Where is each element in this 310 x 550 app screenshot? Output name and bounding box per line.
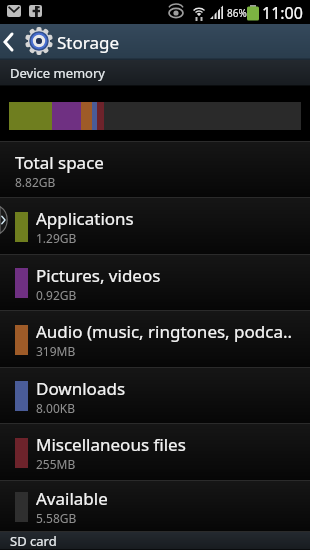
staticText: 0.92GB (36, 287, 77, 303)
staticText: 8.82GB (15, 174, 56, 190)
staticText: 8.00KB (36, 400, 76, 416)
staticText: Audio (music, ringtones, podca.. (36, 320, 293, 343)
staticText: 86% (227, 6, 247, 20)
staticText: 11:00 (262, 2, 303, 24)
staticText: Applications (36, 207, 134, 230)
button[interactable]: Pictures, videos (0, 255, 310, 311)
staticText: 5.58GB (36, 510, 77, 526)
staticText: Pictures, videos (36, 264, 161, 287)
button[interactable]: Total space (0, 142, 310, 198)
staticText: Miscellaneous files (36, 433, 186, 456)
button[interactable]: Downloads (0, 368, 310, 424)
staticText: Downloads (36, 377, 126, 400)
staticText: Available (36, 487, 108, 510)
button[interactable]: Miscellaneous files (0, 424, 310, 481)
staticText: SD card (10, 532, 57, 550)
button[interactable]: Available (0, 481, 310, 532)
staticText: Device memory (10, 64, 105, 82)
staticText: 255MB (36, 456, 76, 472)
staticText: 319MB (36, 343, 76, 359)
button[interactable]: Audio (music, ringtones, podca.. (0, 311, 310, 368)
staticText: Total space (15, 151, 104, 174)
button[interactable]: Storage (57, 31, 120, 54)
staticText: 1.29GB (36, 230, 77, 246)
button[interactable] (0, 24, 56, 60)
button[interactable]: Applications (0, 198, 310, 255)
